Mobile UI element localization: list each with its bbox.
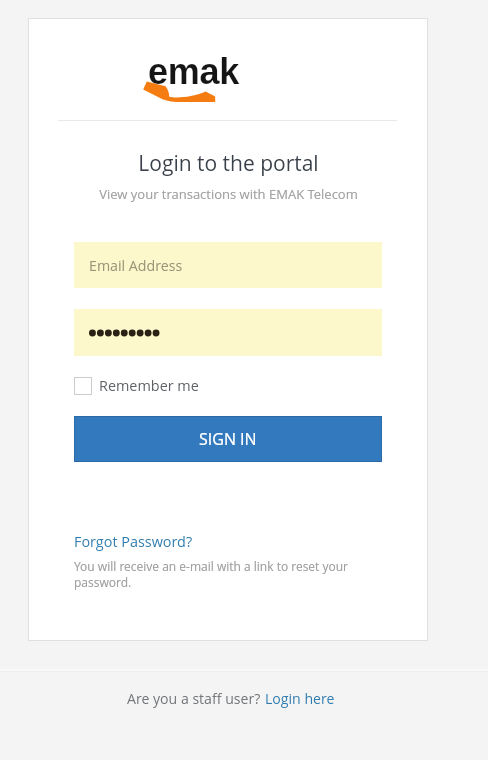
staticText: emak — [148, 51, 239, 91]
staticText: View your transactions with EMAK Telecom — [99, 185, 358, 203]
button[interactable]: Email Address — [74, 242, 382, 288]
staticText: Are you a staff user? — [127, 689, 261, 708]
button[interactable]: Login here — [265, 689, 335, 708]
staticText: Email Address — [89, 256, 183, 275]
staticText: You will receive an e-mail with a link t… — [74, 558, 382, 590]
button[interactable]: Forgot Password? — [74, 532, 193, 552]
button[interactable] — [74, 309, 382, 356]
staticText: SIGN IN — [199, 428, 257, 450]
staticText: Remember me — [99, 376, 199, 396]
button[interactable]: SIGN IN — [74, 416, 382, 462]
staticText: Login to the portal — [138, 149, 319, 178]
button[interactable]: Remember me — [74, 376, 199, 396]
